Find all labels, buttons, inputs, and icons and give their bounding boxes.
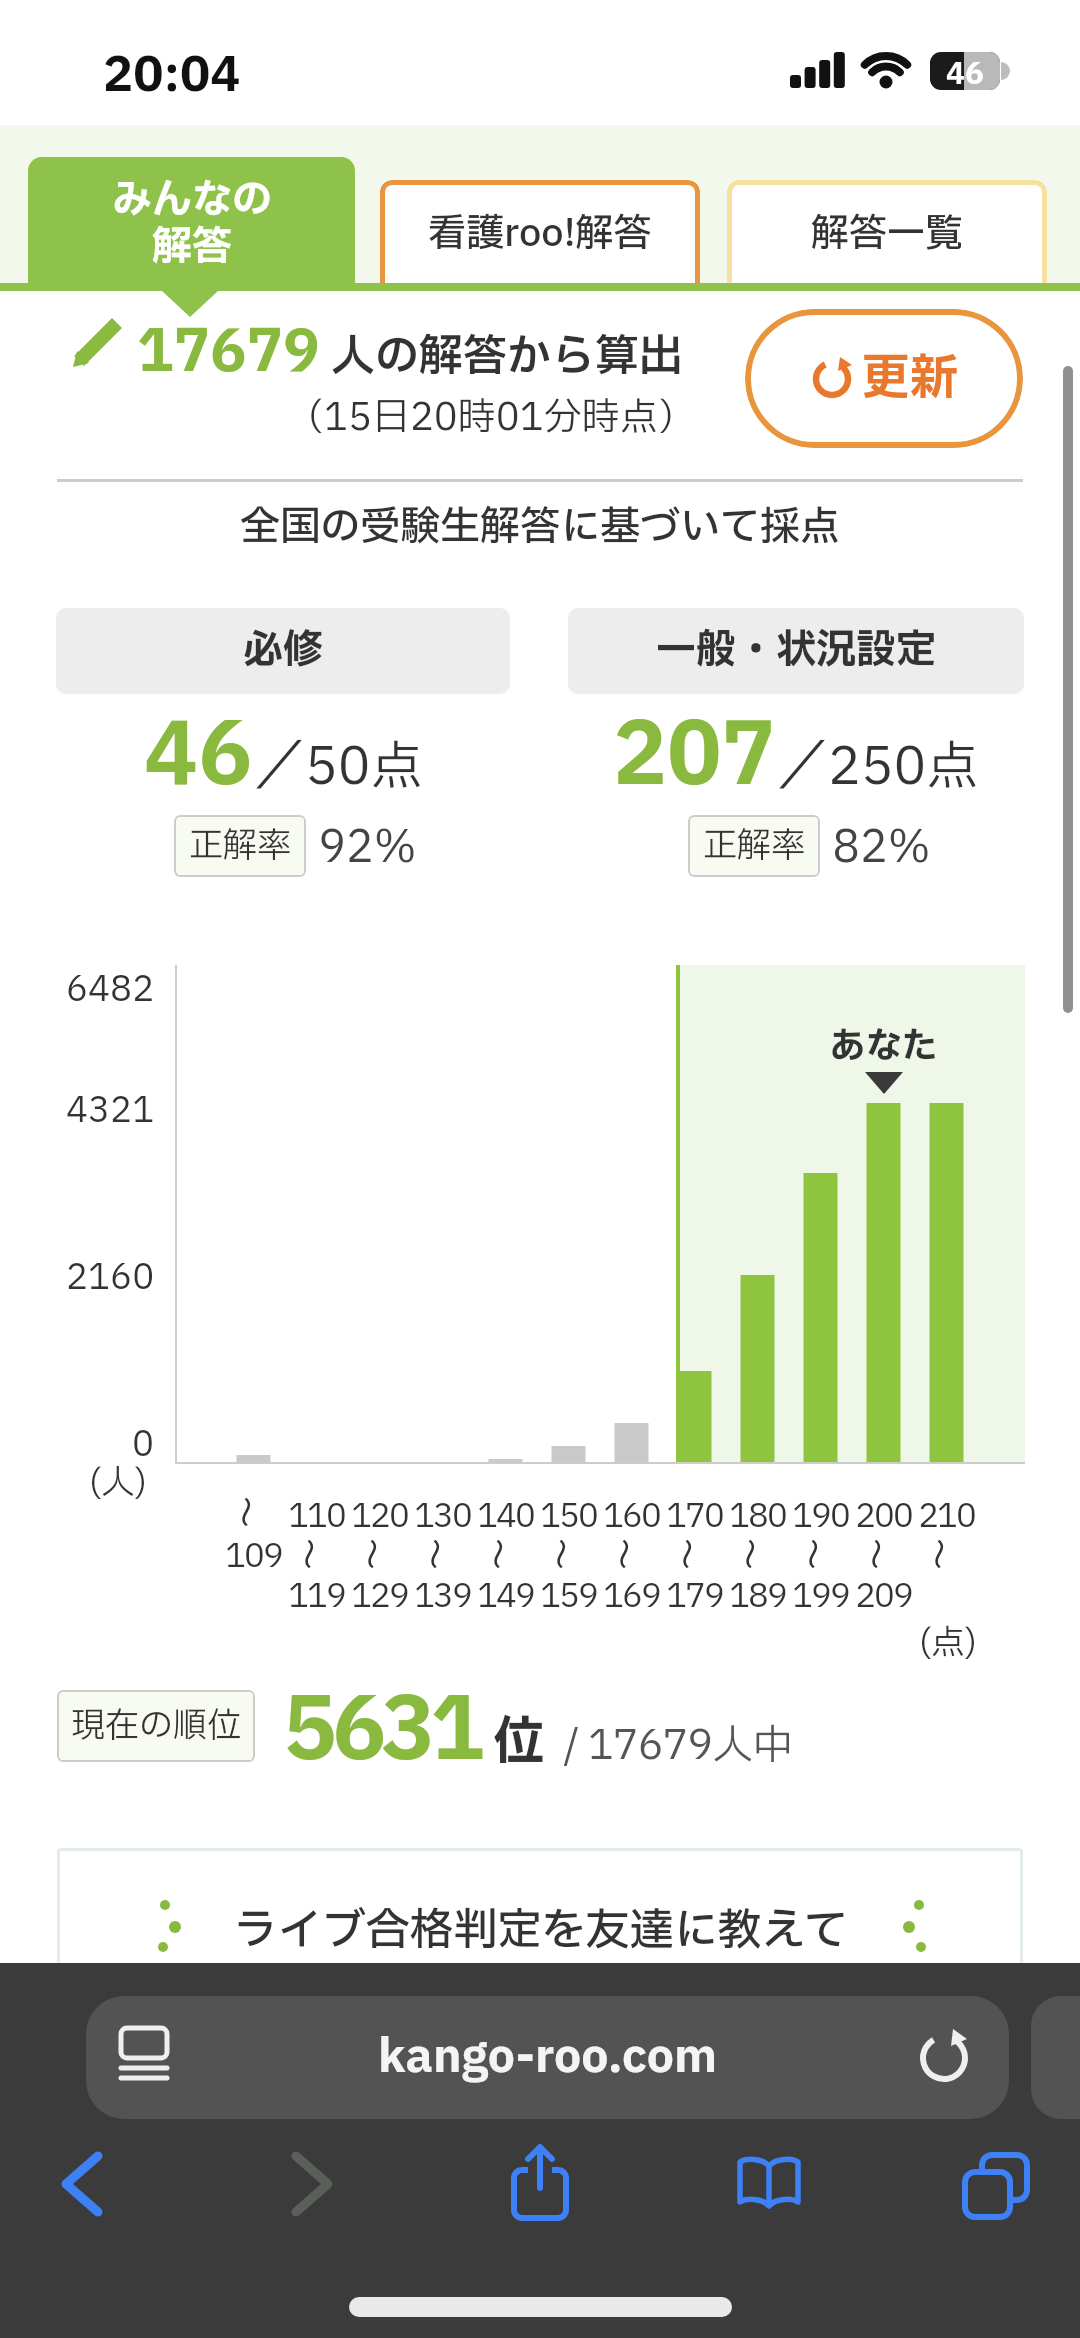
staticText: 46 (144, 693, 253, 793)
button[interactable] (736, 2156, 802, 2212)
staticText: 120 (351, 1492, 408, 1532)
staticText: 17679 (137, 310, 320, 397)
button[interactable] (1031, 1996, 1080, 2119)
staticText: ／250点 (776, 729, 979, 807)
staticText: kango-roo.com (378, 2023, 718, 2092)
staticText: 210 (918, 1492, 975, 1532)
staticText: 92% (318, 815, 417, 877)
staticText: 189 (729, 1572, 786, 1612)
staticText: 110 (288, 1492, 345, 1532)
button[interactable] (962, 2152, 1030, 2220)
staticText: 0 (132, 1419, 155, 1467)
staticText: 200 (855, 1492, 912, 1532)
staticText: 150 (540, 1492, 597, 1532)
button[interactable]: みんなの 解答 (28, 157, 355, 291)
staticText: 〜 (863, 1534, 903, 1574)
staticText: 140 (477, 1492, 534, 1532)
button[interactable]: 解答一覧 (727, 180, 1047, 288)
staticText: 209 (855, 1572, 912, 1612)
staticText: 119 (288, 1572, 345, 1612)
staticText: 〜 (296, 1534, 336, 1574)
staticText: 169 (603, 1572, 660, 1612)
staticText: 139 (414, 1572, 471, 1612)
staticText: 一般・状況設定 (656, 621, 936, 681)
staticText: 149 (477, 1572, 534, 1612)
staticText: 207 (613, 693, 776, 793)
staticText: 129 (351, 1572, 408, 1612)
staticText: 20:04 (103, 40, 241, 112)
button[interactable]: 更新 (745, 309, 1023, 448)
staticText: 正解率 (189, 821, 291, 872)
staticText: 5631 (283, 1668, 480, 1797)
staticText: 人の解答から算出 (320, 324, 683, 390)
staticText: 更新 (862, 343, 959, 415)
staticText: 必修 (243, 621, 323, 681)
staticText: 〜 (422, 1534, 462, 1574)
staticText: 〜 (485, 1534, 525, 1574)
button[interactable]: kango-roo.com (86, 1996, 1009, 2119)
staticText: 看護roo!解答 (428, 206, 652, 263)
staticText: 位 (480, 1704, 545, 1782)
button[interactable]: 看護roo!解答 (380, 180, 700, 288)
staticText: 2160 (66, 1252, 155, 1300)
staticText: 〜 (611, 1534, 651, 1574)
staticText: 109 (225, 1532, 282, 1572)
staticText: 170 (666, 1492, 723, 1532)
staticText: ライブ合格判定を友達に教えて (233, 1898, 848, 1958)
staticText: 〜 (737, 1534, 777, 1574)
staticText: ／50点 (253, 729, 423, 807)
staticText: 〜 (926, 1534, 966, 1574)
staticText: 〜 (674, 1534, 714, 1574)
staticText: 〜 (800, 1534, 840, 1574)
staticText: 46 (946, 52, 984, 90)
staticText: 全国の受験生解答に基づいて採点 (240, 498, 840, 546)
staticText: 82% (832, 815, 931, 877)
button[interactable] (290, 2152, 336, 2216)
staticText: みんなの 解答 (112, 171, 272, 277)
staticText: (人) (89, 1458, 147, 1504)
staticText: 解答一覧 (811, 206, 964, 263)
staticText: 180 (729, 1492, 786, 1532)
staticText: 6482 (66, 964, 155, 1012)
staticText: 190 (792, 1492, 849, 1532)
staticText: 現在の順位 (71, 1701, 241, 1752)
staticText: 159 (540, 1572, 597, 1612)
staticText: 199 (792, 1572, 849, 1612)
staticText: 4321 (66, 1085, 155, 1133)
button[interactable] (58, 2152, 104, 2216)
staticText: 〜 (548, 1534, 588, 1574)
staticText: (点) (919, 1618, 977, 1662)
staticText: 〜 (359, 1534, 399, 1574)
staticText: 〜 (233, 1492, 273, 1532)
staticText: （15日20時01分時点） (286, 390, 696, 447)
button[interactable] (508, 2144, 572, 2222)
staticText: 130 (414, 1492, 471, 1532)
staticText: 179 (666, 1572, 723, 1612)
staticText: 正解率 (703, 821, 805, 872)
staticText: / 17679人中 (545, 1716, 793, 1777)
staticText: 160 (603, 1492, 660, 1532)
staticText: あなた (829, 1020, 938, 1064)
